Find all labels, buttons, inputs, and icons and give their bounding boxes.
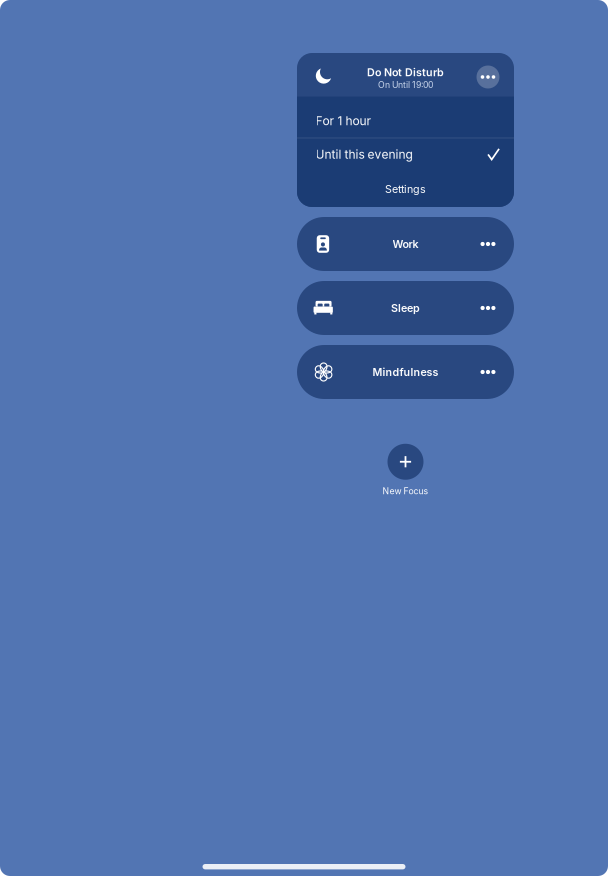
button[interactable]: Until this evening [297, 138, 514, 171]
staticText: On Until 19:00 [378, 80, 433, 90]
button[interactable]: For 1 hour [297, 105, 514, 137]
staticText: Until this evening [316, 147, 413, 162]
staticText: Settings [385, 182, 426, 195]
button[interactable]: Settings [297, 171, 514, 207]
button[interactable]: Sleep [297, 281, 514, 335]
staticText: Mindfulness [372, 365, 438, 378]
button[interactable]: More options [476, 65, 499, 88]
staticText: New Focus [382, 486, 428, 496]
staticText: For 1 hour [316, 114, 372, 128]
staticText: Do Not Disturb [367, 66, 444, 79]
button[interactable]: New Focus [297, 444, 514, 496]
staticText: Work [392, 237, 418, 250]
button[interactable]: Mindfulness [297, 345, 514, 399]
button[interactable]: Work [297, 217, 514, 271]
staticText: Sleep [391, 301, 420, 314]
